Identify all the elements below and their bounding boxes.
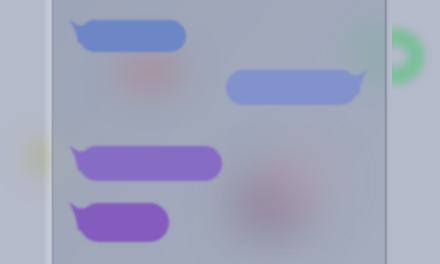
button[interactable]: Chat conversation [0, 0, 440, 264]
